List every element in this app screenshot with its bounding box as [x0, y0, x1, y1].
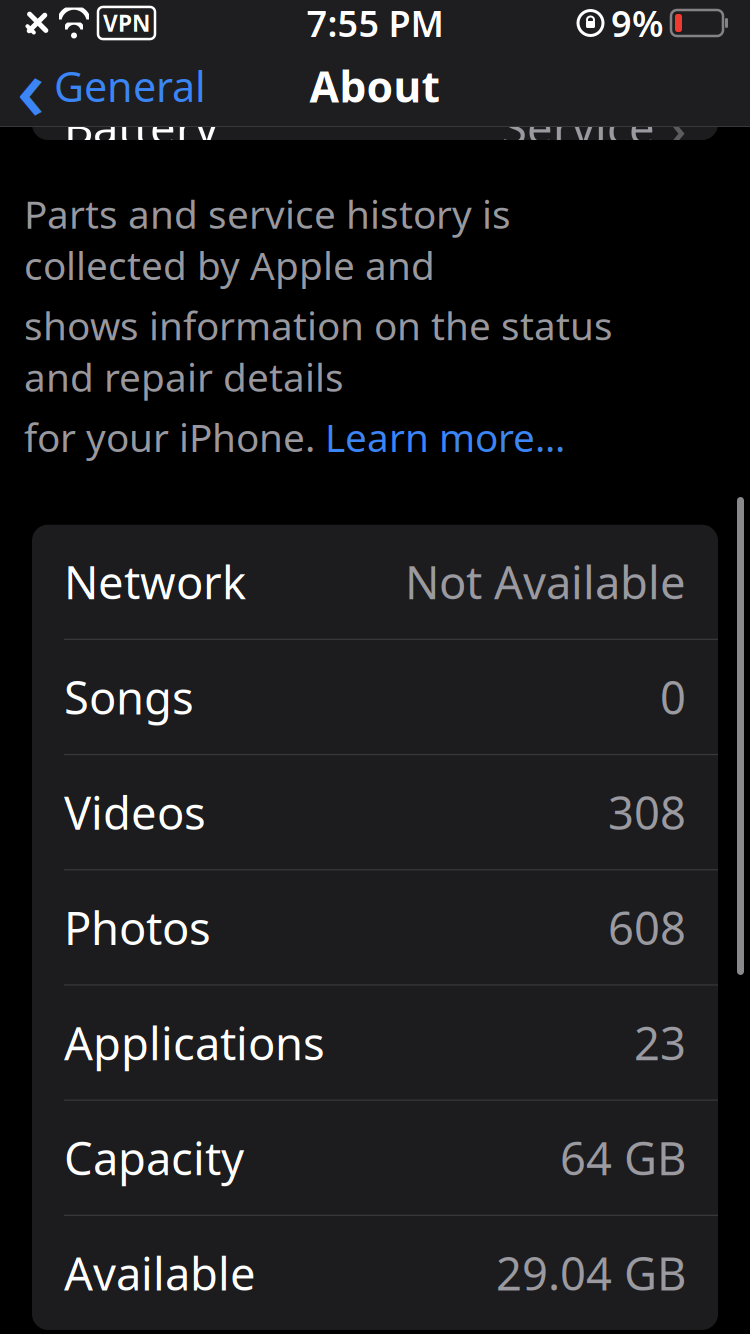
staticText: Capacity: [64, 1128, 244, 1188]
staticText: Network: [64, 552, 246, 612]
staticText: Available: [64, 1243, 256, 1303]
staticText: Not Available: [405, 552, 686, 612]
staticText: shows information on the status and repa…: [24, 300, 613, 402]
button[interactable]: Battery: [32, 70, 718, 184]
staticText: About: [309, 58, 440, 114]
staticText: 7:55 PM: [306, 0, 443, 47]
staticText: 9%: [611, 0, 664, 47]
button[interactable]: Photos: [32, 870, 718, 984]
staticText: 29.04 GB: [496, 1243, 686, 1303]
button[interactable]: Songs: [32, 640, 718, 754]
staticText: Learn more...: [325, 411, 565, 463]
staticText: Service: [502, 97, 655, 157]
staticText: Battery: [64, 97, 218, 157]
staticText: 23: [634, 1012, 686, 1073]
staticText: 64 GB: [560, 1128, 686, 1188]
staticText: Photos: [64, 897, 211, 957]
staticText: Songs: [64, 667, 194, 727]
staticText: VPN: [103, 8, 150, 38]
staticText: Applications: [64, 1012, 325, 1073]
staticText: ‹: [16, 28, 45, 144]
button[interactable]: Available: [32, 1216, 718, 1330]
staticText: 0: [660, 667, 686, 727]
staticText: ›: [669, 92, 686, 162]
staticText: 608: [608, 897, 686, 957]
button[interactable]: Applications: [32, 985, 718, 1099]
staticText: Parts and service history is collected b…: [24, 188, 511, 291]
staticText: General: [54, 59, 206, 113]
button[interactable]: Capacity: [32, 1101, 718, 1215]
button[interactable]: ‹: [0, 53, 206, 119]
button[interactable]: Network: [32, 525, 718, 639]
button[interactable]: Videos: [32, 755, 718, 869]
button[interactable]: Learn more...: [325, 411, 565, 463]
staticText: Videos: [64, 782, 206, 842]
staticText: for your iPhone.: [24, 411, 325, 463]
staticText: 308: [608, 782, 686, 842]
